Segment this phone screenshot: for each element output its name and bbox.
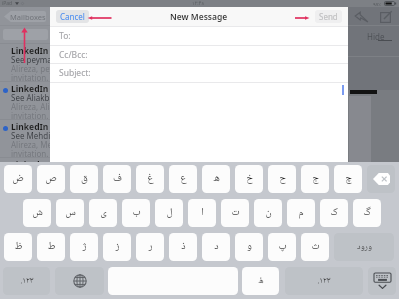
staticText: Alireza, peyma <box>11 63 50 74</box>
button[interactable]: ع <box>169 165 197 193</box>
staticText: Alireza, Ahma <box>11 177 50 188</box>
button[interactable]: Cc/Bcc: <box>50 46 348 64</box>
staticText: To: <box>59 30 71 42</box>
staticText: ط <box>47 238 56 256</box>
staticText: ر <box>148 238 153 256</box>
button[interactable]: ر <box>136 233 164 261</box>
button[interactable]: LinkedIn Cor <box>0 119 50 157</box>
button[interactable]: ح <box>268 165 296 193</box>
staticText: م <box>298 204 304 222</box>
staticText: ی <box>100 204 107 222</box>
button[interactable] <box>50 83 348 238</box>
staticText: LinkedIn Cor <box>11 121 50 133</box>
button[interactable]: ژ <box>70 233 98 261</box>
button[interactable]: Cancel <box>56 10 89 23</box>
staticText: ا <box>201 204 204 222</box>
button[interactable]: Reply <box>354 10 368 24</box>
button[interactable]: م <box>287 199 315 227</box>
button[interactable]: .۱۲۳ <box>3 267 50 295</box>
button[interactable]: ی <box>89 199 117 227</box>
button[interactable]: ز <box>103 233 131 261</box>
staticText: .۱۲۳ <box>20 274 34 288</box>
staticText: ج <box>312 170 319 188</box>
button[interactable]: LinkedIn Cor <box>0 43 50 81</box>
button[interactable]: ک <box>320 199 348 227</box>
button[interactable] <box>3 29 48 40</box>
button[interactable]: گ <box>353 199 381 227</box>
staticText: خ <box>246 170 253 188</box>
button[interactable]: Hide <box>348 31 399 41</box>
staticText: Alireza, Aliakb <box>11 101 50 112</box>
button[interactable]: Hide keyboard <box>368 267 396 295</box>
button[interactable]: ل <box>155 199 183 227</box>
staticText: Subject: <box>59 67 91 79</box>
staticText: ژ <box>82 238 87 256</box>
staticText: ش <box>32 204 43 222</box>
button[interactable]: Subject: <box>50 64 348 82</box>
button[interactable]: س <box>56 199 84 227</box>
button[interactable]: Send <box>315 10 342 23</box>
staticText: See Ahmad's <box>11 168 50 179</box>
button[interactable]: هٔ <box>242 267 279 295</box>
staticText: New Message <box>170 11 228 23</box>
button[interactable]: و <box>235 233 263 261</box>
button[interactable]: .۱۲۳ <box>285 267 363 295</box>
button[interactable]: ش <box>23 199 51 227</box>
staticText: ض <box>12 170 24 188</box>
button[interactable]: خ <box>235 165 263 193</box>
staticText: invitation, pey <box>11 72 50 81</box>
staticText: .۱۲۳ <box>317 274 331 288</box>
staticText: Cancel <box>60 11 85 22</box>
staticText: Mailboxes <box>10 12 46 22</box>
staticText: ل <box>166 204 173 222</box>
staticText: چ <box>345 170 352 188</box>
button[interactable]: Space <box>108 267 238 295</box>
button[interactable]: ا <box>188 199 216 227</box>
staticText: غ <box>147 170 154 188</box>
button[interactable]: غ <box>136 165 164 193</box>
button[interactable]: ه <box>202 165 230 193</box>
button[interactable]: ورود <box>334 233 394 261</box>
staticText: ۱۲:۴۸ <box>192 0 205 7</box>
button[interactable]: ص <box>37 165 65 193</box>
staticText: LinkedIn Cor <box>11 83 50 95</box>
button[interactable]: Backspace <box>367 165 395 193</box>
button[interactable]: LinkedIn Cor <box>0 81 50 119</box>
staticText: س <box>65 204 76 222</box>
staticText: ظ <box>14 238 23 256</box>
staticText: ن <box>265 204 272 222</box>
button[interactable]: Compose <box>378 10 392 24</box>
staticText: د <box>214 238 219 256</box>
staticText: پ <box>278 238 287 256</box>
staticText: See Mehdi's c <box>11 130 50 141</box>
button[interactable]: ث <box>301 233 329 261</box>
button[interactable]: چ <box>334 165 362 193</box>
button[interactable]: د <box>202 233 230 261</box>
staticText: ب <box>132 204 141 222</box>
button[interactable]: ن <box>254 199 282 227</box>
staticText: ت <box>231 204 240 222</box>
button[interactable]: Change keyboard <box>55 267 104 295</box>
button[interactable]: ط <box>37 233 65 261</box>
staticText: iPad <box>2 0 13 7</box>
button[interactable]: ق <box>70 165 98 193</box>
staticText: ح <box>279 170 286 188</box>
button[interactable]: Mailboxes <box>4 11 46 22</box>
staticText: ث <box>311 238 320 256</box>
button[interactable]: ج <box>301 165 329 193</box>
staticText: و <box>247 238 252 256</box>
button[interactable]: ب <box>122 199 150 227</box>
button[interactable]: To: <box>50 27 348 45</box>
button[interactable]: ذ <box>169 233 197 261</box>
button[interactable]: LinkedIn Cor <box>0 157 50 195</box>
button[interactable]: ظ <box>4 233 32 261</box>
staticText: invitation. Alia <box>11 110 50 119</box>
staticText: گ <box>363 204 371 222</box>
button[interactable]: ض <box>4 165 32 193</box>
staticText: هٔ <box>258 274 264 288</box>
staticText: See peyman's <box>11 54 50 65</box>
button[interactable]: ف <box>103 165 131 193</box>
staticText: Cc/Bcc: <box>59 49 88 61</box>
button[interactable]: ت <box>221 199 249 227</box>
button[interactable]: پ <box>268 233 296 261</box>
